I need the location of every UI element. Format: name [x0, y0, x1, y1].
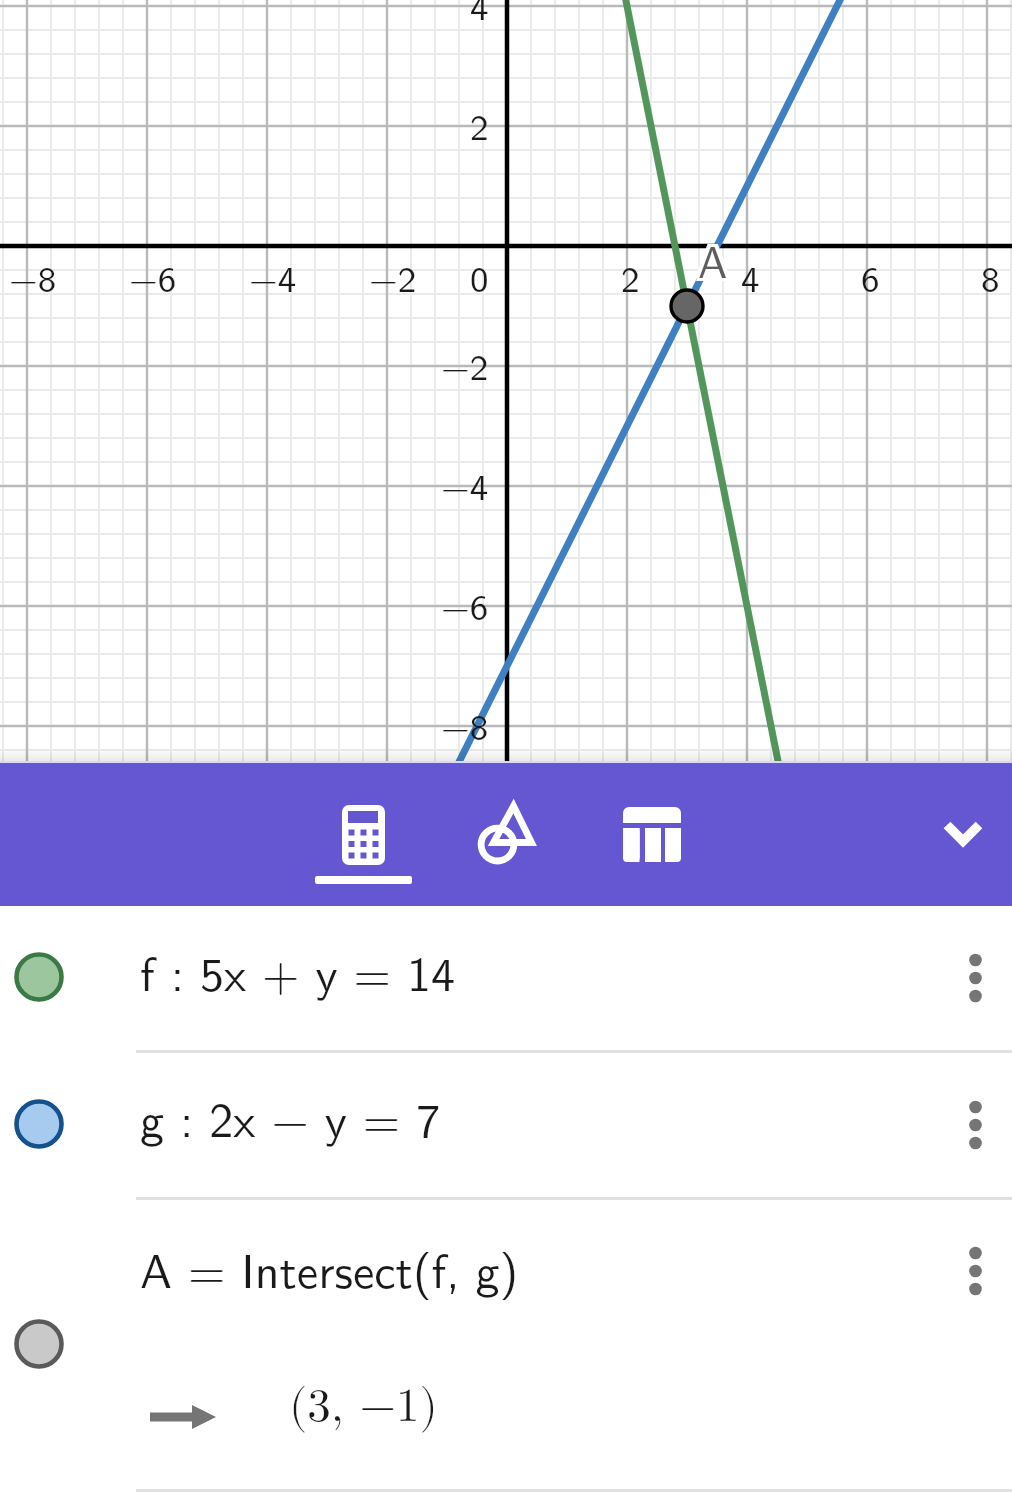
staticText: A: [698, 227, 728, 291]
button[interactable]: Graphing calculator: [303, 763, 424, 906]
staticText: −4: [441, 457, 489, 511]
staticText: −2: [441, 337, 489, 391]
staticText: A = Intersect(f, g): [140, 1233, 519, 1303]
staticText: A: [701, 224, 731, 288]
button[interactable]: A = Intersect(f, g): [0, 1198, 1012, 1488]
staticText: −6: [129, 249, 177, 303]
staticText: −8: [9, 249, 57, 303]
staticText: g : 2x − y = 7: [140, 1082, 441, 1152]
staticText: −8: [441, 697, 489, 751]
staticText: A: [701, 227, 731, 291]
button[interactable]: Table of values: [592, 763, 712, 906]
staticText: (3, −1): [289, 1383, 438, 1430]
staticText: 0: [470, 249, 489, 303]
staticText: A: [698, 230, 728, 294]
staticText: A: [701, 230, 731, 294]
staticText: A: [698, 224, 728, 288]
staticText: 2: [621, 249, 640, 303]
staticText: −2: [369, 249, 417, 303]
staticText: 2: [470, 97, 489, 151]
staticText: −4: [249, 249, 297, 303]
button[interactable]: f : 5x + y = 14: [0, 906, 1012, 1051]
button[interactable]: More options: [930, 1081, 1012, 1171]
button[interactable]: g : 2x − y = 7: [0, 1051, 1012, 1198]
button[interactable]: Geometry: [447, 763, 567, 906]
staticText: −6: [441, 577, 489, 631]
staticText: 6: [861, 249, 880, 303]
button[interactable]: More options: [930, 934, 1012, 1024]
staticText: 8: [981, 249, 1000, 303]
staticText: 4: [741, 249, 760, 303]
staticText: A: [695, 230, 725, 294]
button[interactable]: More options: [930, 1227, 1012, 1317]
staticText: f : 5x + y = 14: [140, 936, 455, 1006]
staticText: A: [695, 224, 725, 288]
staticText: 4: [470, 0, 489, 31]
button[interactable]: Collapse panel: [915, 763, 1012, 906]
staticText: A: [695, 227, 725, 291]
